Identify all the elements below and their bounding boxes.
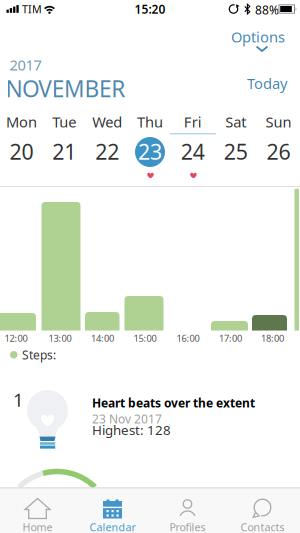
staticText: Options xyxy=(231,27,285,46)
staticText: Sat xyxy=(225,112,246,131)
staticText: TIM xyxy=(22,2,42,16)
button[interactable]: 24 xyxy=(171,137,214,167)
staticText: 18:00 xyxy=(261,332,284,344)
staticText: Calendar xyxy=(89,520,135,533)
staticText: Home xyxy=(22,520,52,533)
staticText: 23 xyxy=(138,137,162,166)
staticText: 24 xyxy=(181,137,205,166)
button[interactable]: 22 xyxy=(86,137,129,167)
button[interactable]: Home xyxy=(0,487,75,532)
staticText: Tue xyxy=(52,112,76,131)
button[interactable]: Contacts xyxy=(225,487,300,532)
staticText: 16:00 xyxy=(176,332,199,344)
staticText: 23 Nov 2017 xyxy=(92,411,162,427)
staticText: Wed xyxy=(92,112,122,131)
button[interactable]: Options xyxy=(215,29,285,55)
staticText: Highest: 128 xyxy=(92,421,171,439)
staticText: 12:00 xyxy=(4,332,27,344)
staticText: 88% xyxy=(255,2,279,18)
button[interactable]: 26 xyxy=(257,137,300,167)
button[interactable]: Profiles xyxy=(150,487,225,532)
staticText: Heart beats over the extent xyxy=(92,395,255,411)
staticText: Fri xyxy=(184,112,202,131)
button[interactable]: Today xyxy=(227,73,287,93)
staticText: 21 xyxy=(52,137,76,166)
button[interactable]: Calendar xyxy=(75,487,150,532)
staticText: 2017 xyxy=(9,55,41,74)
button[interactable]: 25 xyxy=(214,137,257,167)
staticText: Today xyxy=(247,73,287,93)
button[interactable]: 1 xyxy=(0,390,300,470)
staticText: 1 xyxy=(13,387,24,412)
staticText: 17:00 xyxy=(219,332,242,344)
staticText: Thu xyxy=(137,112,163,131)
staticText: 20 xyxy=(9,137,33,166)
staticText: 22 xyxy=(95,137,119,166)
staticText: 25 xyxy=(224,137,248,166)
staticText: Mon xyxy=(6,112,37,131)
staticText: Profiles xyxy=(169,520,205,533)
staticText: Steps: xyxy=(22,347,56,363)
button[interactable]: 23 xyxy=(129,137,171,167)
staticText: 15:00 xyxy=(133,332,156,344)
button[interactable]: 20 xyxy=(0,137,43,167)
staticText: NOVEMBER xyxy=(5,73,125,104)
staticText: 13:00 xyxy=(48,332,71,344)
button[interactable]: 21 xyxy=(43,137,86,167)
staticText: Sun xyxy=(266,112,292,131)
staticText: 14:00 xyxy=(91,332,114,344)
staticText: 26 xyxy=(267,137,291,166)
staticText: 15:20 xyxy=(134,1,165,17)
staticText: Contacts xyxy=(240,520,284,533)
